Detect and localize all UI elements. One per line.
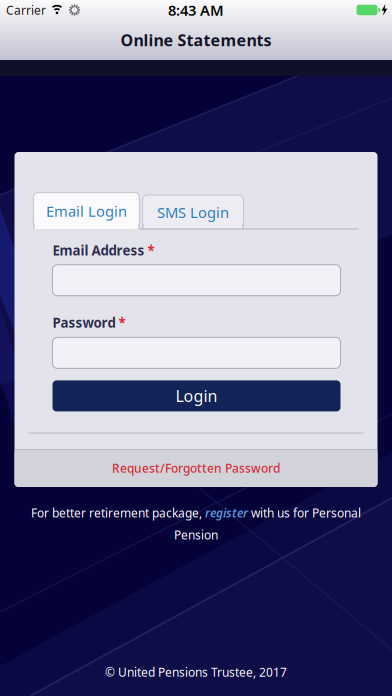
staticText: with us for Personal (248, 505, 361, 521)
staticText: © United Pensions Trustee, 2017 (105, 664, 287, 680)
staticText: Email Address (52, 241, 144, 259)
staticText: SMS Login (157, 202, 229, 222)
staticText: register (205, 505, 248, 521)
button[interactable]: SMS Login (142, 195, 243, 229)
staticText: Online Statements (120, 29, 271, 51)
button[interactable]: Email Login (33, 192, 139, 229)
staticText: Password (52, 314, 115, 331)
staticText: Request/Forgotten Password (112, 460, 280, 476)
button[interactable]: Request/Forgotten Password (14, 449, 377, 487)
staticText: Login (175, 385, 217, 406)
staticText: Carrier (6, 2, 46, 18)
staticText: * (144, 241, 154, 259)
staticText: 8:43 AM (168, 0, 224, 20)
staticText: Pension (174, 527, 218, 543)
staticText: Email Login (46, 201, 127, 221)
button[interactable]: register (205, 505, 248, 521)
staticText: * (115, 314, 125, 331)
staticText: For better retirement package, (31, 505, 205, 521)
button[interactable]: Login (52, 380, 340, 411)
